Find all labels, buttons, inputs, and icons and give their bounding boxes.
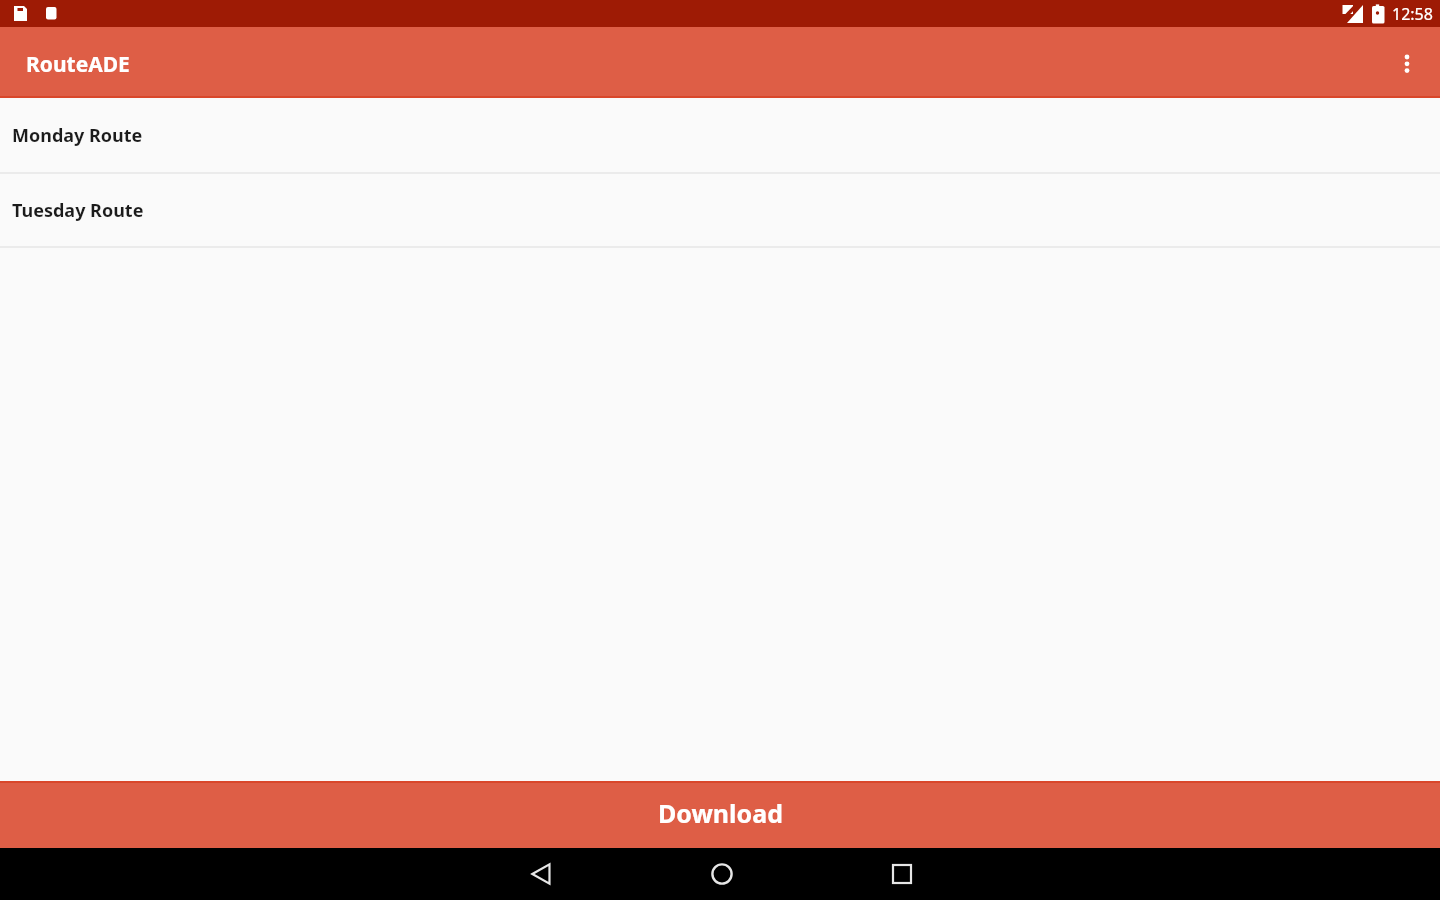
button[interactable]: Back: [502, 848, 582, 900]
staticText: Monday Route: [12, 123, 143, 148]
button[interactable]: Recent apps: [862, 848, 942, 900]
staticText: RouteADE: [26, 50, 130, 79]
button[interactable]: Monday Route: [0, 98, 1440, 174]
staticText: Tuesday Route: [12, 198, 144, 223]
button[interactable]: Home: [682, 848, 762, 900]
button[interactable]: Download: [0, 781, 1440, 848]
button[interactable]: Tuesday Route: [0, 174, 1440, 248]
staticText: Download: [658, 796, 783, 830]
staticText: 12:58: [1392, 3, 1433, 25]
button[interactable]: More options: [1379, 35, 1435, 91]
